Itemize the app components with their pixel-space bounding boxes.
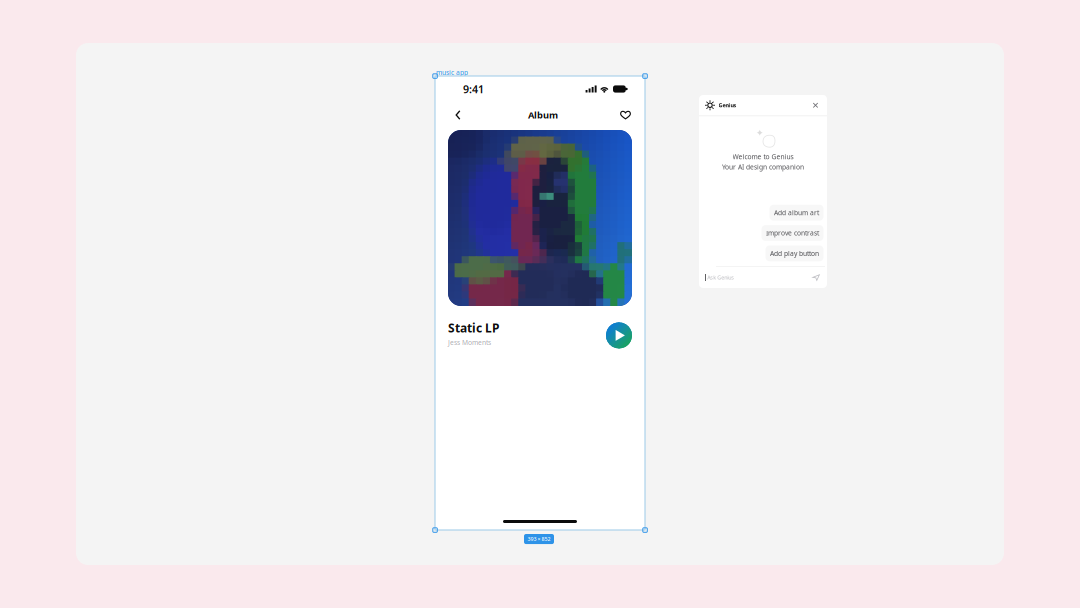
button[interactable]: Favorite (615, 104, 636, 125)
staticText: Static LP (448, 320, 499, 336)
staticText: Album (528, 109, 558, 121)
staticText: Genius (718, 102, 736, 109)
button[interactable]: Add play button (765, 245, 823, 261)
staticText: Add play button (770, 249, 819, 258)
button[interactable]: Improve contrast (761, 225, 823, 241)
button[interactable]: Back (447, 104, 468, 125)
staticText: 9:41 (463, 82, 484, 96)
staticText: Your AI design companion (722, 163, 804, 171)
staticText: music app (436, 68, 468, 77)
button[interactable]: Add album art (769, 205, 823, 221)
button[interactable]: Close (809, 99, 822, 112)
staticText: Jess Moments (448, 338, 491, 347)
button[interactable]: Play (606, 320, 632, 346)
staticText: Add album art (774, 208, 819, 217)
staticText: 393 × 852 (527, 535, 550, 543)
staticText: Welcome to Genius (732, 152, 793, 161)
button[interactable]: Send (810, 271, 822, 283)
staticText: Improve contrast (766, 229, 819, 237)
staticText: Ask Genius (707, 274, 734, 281)
